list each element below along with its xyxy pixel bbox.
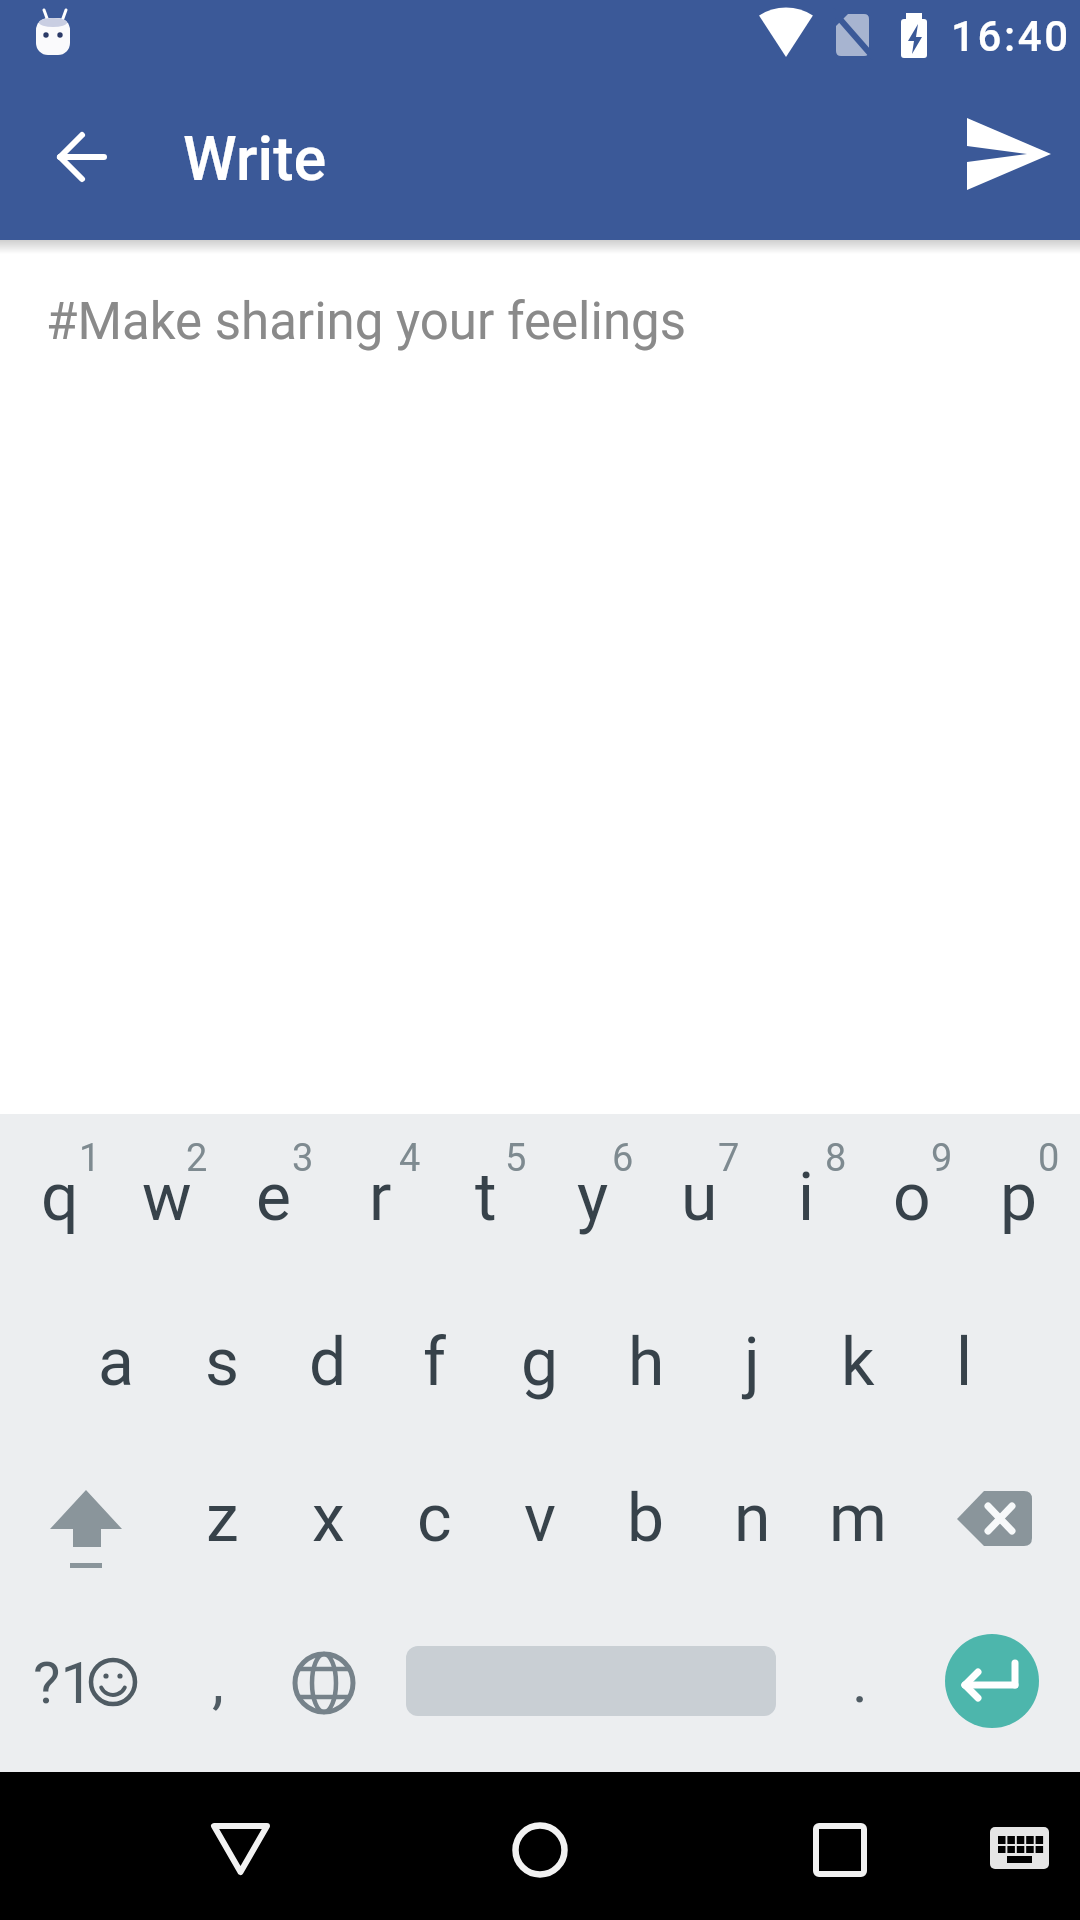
button[interactable]: e [220,1118,326,1276]
button[interactable]: q [7,1118,113,1276]
button[interactable]: k [805,1283,911,1441]
button[interactable] [36,1475,136,1580]
button[interactable]: o [859,1118,965,1276]
staticText: p [1000,1159,1038,1236]
staticText: 8 [825,1136,847,1181]
staticText: k [841,1324,875,1401]
staticText: b [627,1480,665,1557]
button[interactable]: a [63,1283,169,1441]
staticText: , [212,1646,224,1716]
button[interactable]: v [487,1439,593,1597]
button[interactable]: r [327,1118,433,1276]
staticText: d [309,1324,347,1401]
staticText: c [417,1480,452,1557]
staticText: a [98,1324,134,1401]
button[interactable]: n [699,1439,805,1597]
button[interactable] [945,1485,1045,1555]
staticText: ?1 [33,1649,94,1717]
button[interactable] [945,1634,1039,1728]
staticText: 1 [79,1136,101,1181]
button[interactable]: i [753,1118,859,1276]
button[interactable]: b [593,1439,699,1597]
button[interactable]: d [275,1283,381,1441]
button[interactable]: t [433,1118,539,1276]
staticText: 2 [186,1136,208,1181]
staticText: v [524,1480,556,1557]
staticText: 5 [505,1136,527,1181]
button[interactable]: c [381,1439,487,1597]
staticText: #Make sharing your feelings [46,292,687,352]
staticText: 16:40 [951,12,1071,61]
staticText: e [256,1159,291,1236]
button[interactable] [274,1633,374,1733]
staticText: . [852,1646,868,1716]
staticText: n [734,1480,771,1557]
button[interactable]: s [169,1283,275,1441]
staticText: 4 [399,1136,421,1181]
button[interactable]: z [169,1439,275,1597]
button[interactable]: j [699,1283,805,1441]
button[interactable]: y [540,1118,646,1276]
staticText: r [369,1159,392,1236]
staticText: w [142,1159,192,1236]
button[interactable] [946,113,1056,197]
staticText: x [312,1480,345,1557]
staticText: h [628,1324,665,1401]
staticText: g [521,1324,559,1401]
staticText: l [956,1324,973,1401]
button[interactable]: , [178,1626,258,1736]
staticText: z [206,1480,239,1557]
staticText: q [41,1159,79,1236]
staticText: y [577,1159,609,1236]
button[interactable]: l [911,1283,1017,1441]
staticText: Write [183,123,327,194]
button[interactable] [40,114,124,198]
button[interactable]: h [593,1283,699,1441]
button[interactable]: m [805,1439,911,1597]
staticText: 9 [931,1136,953,1181]
button[interactable]: f [381,1283,487,1441]
button[interactable]: x [275,1439,381,1597]
staticText: j [744,1324,760,1401]
staticText: 6 [612,1136,634,1181]
staticText: 7 [718,1136,740,1181]
button[interactable] [798,1804,882,1888]
staticText: f [423,1324,446,1401]
staticText: s [205,1324,240,1401]
button[interactable] [498,1804,582,1888]
staticText: 0 [1038,1136,1060,1181]
button[interactable]: p [966,1118,1072,1276]
staticText: 3 [292,1136,314,1181]
button[interactable]: . [820,1626,900,1736]
staticText: t [475,1159,497,1236]
staticText: m [829,1480,887,1557]
button[interactable] [198,1804,282,1888]
button[interactable] [980,1817,1060,1879]
button[interactable]: ?1 [20,1640,150,1720]
staticText: i [798,1159,815,1236]
button[interactable]: g [487,1283,593,1441]
staticText: u [681,1159,718,1236]
staticText: o [893,1159,931,1236]
button[interactable]: u [646,1118,752,1276]
button[interactable]: w [114,1118,220,1276]
